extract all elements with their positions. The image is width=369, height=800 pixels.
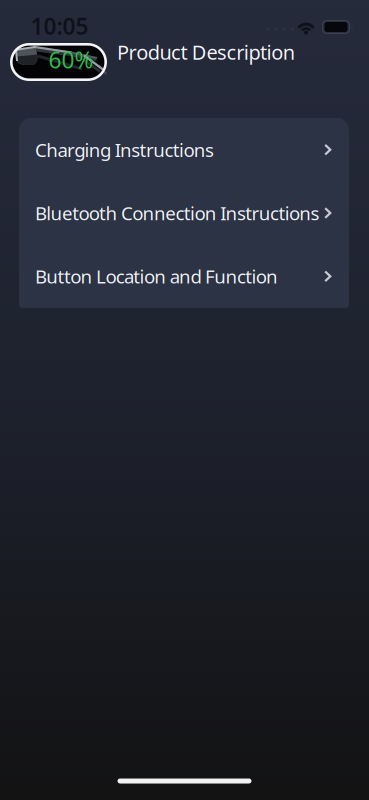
staticText: Bluetooth Connection Instructions <box>35 201 320 225</box>
button[interactable]: Glasses battery 60% <box>10 43 107 81</box>
staticText: Product Description <box>117 39 295 65</box>
staticText: Button Location and Function <box>35 264 278 289</box>
staticText: 60% <box>48 45 93 75</box>
staticText: Charging Instructions <box>35 137 214 162</box>
button[interactable]: Bluetooth Connection Instructions <box>19 181 349 245</box>
button[interactable]: Button Location and Function <box>19 245 349 308</box>
staticText: 10:05 <box>30 11 88 41</box>
button[interactable]: Charging Instructions <box>19 118 349 181</box>
